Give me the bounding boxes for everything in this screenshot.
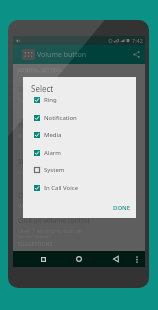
button[interactable]: Media	[23, 128, 136, 142]
button[interactable]: Play / pause music	[13, 112, 145, 148]
button[interactable]: Volume button	[13, 45, 145, 64]
button[interactable]: Click on volume control	[13, 216, 145, 238]
staticText: In Call Voice	[44, 184, 79, 192]
button[interactable]: Recents	[37, 253, 49, 265]
button[interactable]: Ring	[23, 93, 136, 107]
staticText: Notification	[44, 114, 77, 122]
staticText: DONE	[113, 204, 131, 212]
button[interactable]: Change volume with screen off	[13, 184, 145, 216]
button[interactable]: Notification	[23, 111, 136, 125]
button[interactable]: Alarm	[23, 146, 136, 160]
staticText: Volume button action	[18, 85, 84, 94]
staticText: Ring	[44, 96, 57, 104]
button[interactable]: Home	[73, 253, 85, 265]
button[interactable]: In Call Voice	[23, 181, 136, 195]
staticText: Select	[31, 83, 54, 94]
staticText: Set what the keys do	[18, 96, 72, 103]
button[interactable]: System	[23, 163, 136, 177]
button[interactable]: DONE	[110, 201, 134, 215]
staticText: System	[44, 166, 65, 174]
button[interactable]: Back	[110, 253, 122, 265]
staticText: Press both keys together	[18, 132, 83, 139]
staticText: 7:42	[132, 37, 143, 44]
staticText: Skip track	[18, 157, 48, 166]
staticText: GENERAL SETTING	[18, 67, 62, 74]
staticText: Volume button	[37, 50, 86, 60]
staticText: Click on volume control	[18, 216, 90, 225]
button[interactable]: Share	[131, 49, 142, 60]
staticText: Media	[44, 131, 62, 139]
button[interactable]: More options	[131, 253, 143, 265]
staticText: Long press volume keys	[18, 168, 80, 175]
staticText: Alarm	[44, 149, 61, 157]
staticText: Play / pause music	[18, 121, 75, 130]
staticText: Change volume with screen off	[18, 191, 113, 200]
button[interactable]: Skip track	[13, 148, 145, 184]
staticText: Works when locked	[18, 202, 69, 209]
button[interactable]: Volume button action	[13, 76, 145, 112]
staticText: SUGGESTIONS	[18, 241, 53, 248]
